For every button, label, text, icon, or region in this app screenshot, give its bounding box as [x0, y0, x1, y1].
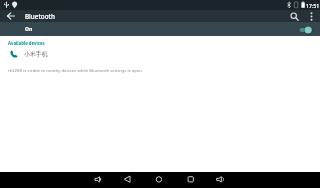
button[interactable] — [181, 172, 201, 188]
button[interactable] — [287, 10, 301, 22]
staticText: Bluetooth — [25, 12, 55, 21]
button[interactable]: On — [0, 22, 320, 36]
button[interactable] — [212, 172, 232, 188]
staticText: 小米手机 — [24, 50, 48, 57]
staticText: Available devices — [8, 40, 45, 46]
button[interactable] — [88, 172, 108, 188]
staticText: rk3288 is visible to nearby devices whil… — [8, 67, 144, 73]
button[interactable] — [149, 172, 169, 188]
button[interactable] — [117, 172, 137, 188]
button[interactable]: 小米手机 — [0, 47, 320, 60]
button[interactable] — [304, 10, 318, 22]
staticText: On — [25, 26, 33, 33]
button[interactable] — [3, 10, 18, 22]
staticText: 17:51 — [306, 2, 320, 9]
